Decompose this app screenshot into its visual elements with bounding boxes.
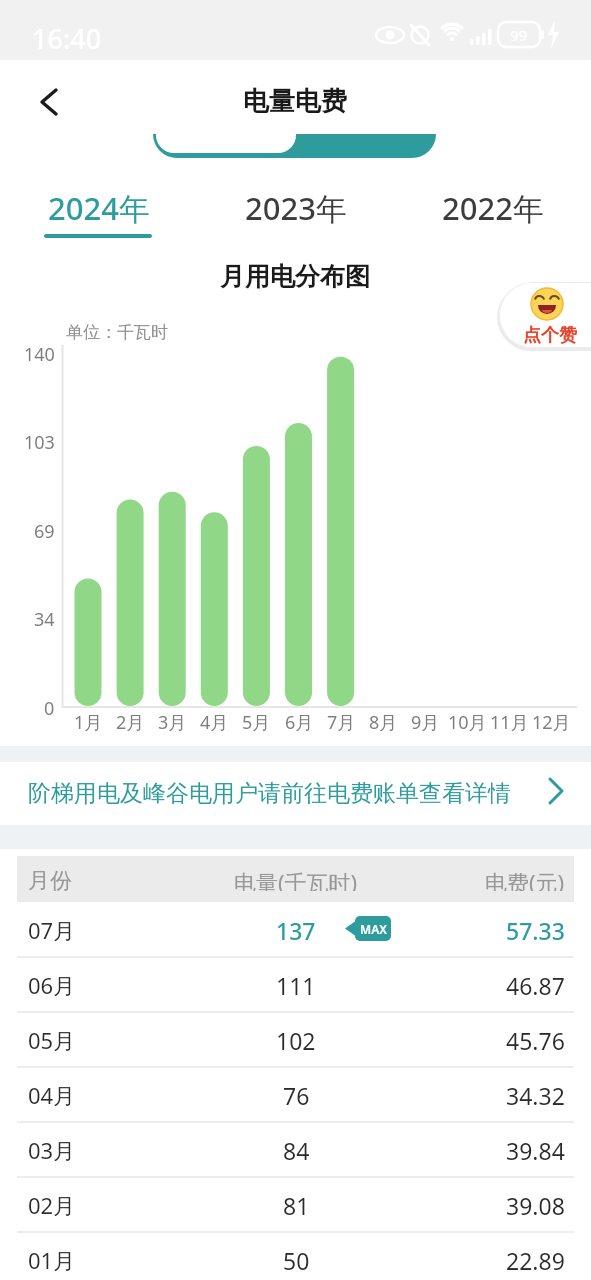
staticText: 07月 bbox=[28, 915, 76, 941]
staticText: 2022年 bbox=[442, 187, 544, 229]
staticText: 50 bbox=[283, 1245, 310, 1271]
staticText: 3月 bbox=[158, 710, 187, 732]
staticText: 电费(元) bbox=[485, 867, 565, 891]
staticText: 69 bbox=[34, 519, 55, 541]
staticText: 34.32 bbox=[506, 1080, 565, 1106]
button[interactable] bbox=[0, 762, 591, 825]
staticText: 5月 bbox=[242, 710, 271, 732]
staticText: 39.84 bbox=[506, 1135, 565, 1161]
staticText: 16:40 bbox=[32, 20, 102, 50]
staticText: 01月 bbox=[28, 1245, 76, 1271]
staticText: 45.76 bbox=[506, 1025, 565, 1051]
button[interactable]: 2024年 bbox=[4, 183, 194, 233]
staticText: 0 bbox=[44, 696, 55, 718]
staticText: 阶梯用电及峰谷电用户请前往电费账单查看详情 bbox=[28, 779, 511, 805]
staticText: MAX bbox=[360, 921, 387, 937]
staticText: 7月 bbox=[327, 710, 356, 732]
staticText: 06月 bbox=[28, 970, 76, 996]
staticText: 月份 bbox=[28, 867, 72, 891]
button[interactable] bbox=[0, 902, 591, 957]
button[interactable] bbox=[156, 134, 296, 153]
button[interactable] bbox=[153, 134, 436, 158]
staticText: 12月 bbox=[532, 710, 571, 732]
staticText: 2023年 bbox=[245, 187, 347, 229]
staticText: 电量电费 bbox=[243, 85, 347, 117]
staticText: 22.89 bbox=[506, 1245, 565, 1271]
staticText: 2月 bbox=[116, 710, 145, 732]
staticText: 103 bbox=[24, 430, 55, 452]
button[interactable] bbox=[0, 957, 591, 1012]
staticText: 84 bbox=[283, 1135, 310, 1161]
staticText: 46.87 bbox=[506, 970, 565, 996]
button[interactable] bbox=[0, 1012, 591, 1067]
staticText: 76 bbox=[283, 1080, 310, 1106]
staticText: 8月 bbox=[369, 710, 398, 732]
staticText: 11月 bbox=[490, 710, 529, 732]
staticText: 102 bbox=[276, 1025, 316, 1051]
button[interactable] bbox=[0, 1232, 591, 1280]
staticText: 单位：千瓦时 bbox=[66, 322, 168, 342]
staticText: 99 bbox=[510, 25, 528, 45]
staticText: 04月 bbox=[28, 1080, 76, 1106]
button[interactable]: 2022年 bbox=[398, 183, 588, 233]
staticText: 4月 bbox=[200, 710, 229, 732]
button[interactable] bbox=[0, 1122, 591, 1177]
staticText: 39.08 bbox=[506, 1190, 565, 1216]
staticText: 140 bbox=[24, 342, 55, 364]
staticText: 点个赞 bbox=[523, 324, 577, 344]
staticText: 1月 bbox=[74, 710, 103, 732]
staticText: 34 bbox=[34, 607, 55, 629]
staticText: 2024年 bbox=[48, 187, 150, 229]
staticText: 137 bbox=[276, 915, 316, 941]
button[interactable] bbox=[0, 1067, 591, 1122]
staticText: 05月 bbox=[28, 1025, 76, 1051]
staticText: 02月 bbox=[28, 1190, 76, 1216]
staticText: 81 bbox=[283, 1190, 310, 1216]
staticText: 03月 bbox=[28, 1135, 76, 1161]
staticText: 111 bbox=[276, 970, 316, 996]
staticText: 电量(千瓦时) bbox=[234, 867, 358, 891]
staticText: 10月 bbox=[448, 710, 487, 732]
staticText: 月用电分布图 bbox=[220, 261, 370, 291]
staticText: 57.33 bbox=[506, 915, 565, 941]
button[interactable] bbox=[26, 79, 70, 123]
staticText: 6月 bbox=[285, 710, 314, 732]
button[interactable] bbox=[0, 1177, 591, 1232]
button[interactable] bbox=[499, 282, 591, 348]
button[interactable]: 2023年 bbox=[201, 183, 391, 233]
staticText: 9月 bbox=[411, 710, 440, 732]
